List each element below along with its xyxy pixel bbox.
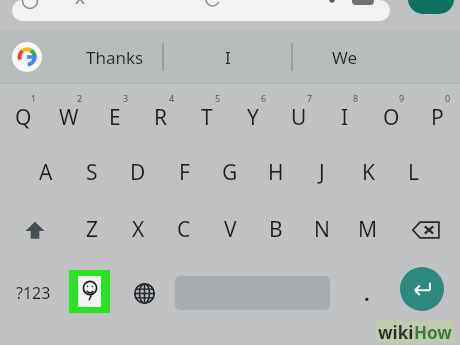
button[interactable]: N — [299, 201, 345, 258]
staticText: ?123 — [16, 282, 51, 304]
staticText: 3 — [123, 92, 129, 104]
staticText: 0 — [445, 92, 451, 104]
button[interactable]: Backspace — [391, 201, 460, 258]
button[interactable]: Shift — [0, 201, 69, 258]
staticText: Thanks — [86, 46, 144, 69]
staticText: . — [364, 280, 370, 307]
button[interactable]: Q — [0, 84, 46, 144]
button[interactable]: Y — [230, 84, 276, 144]
staticText: 9 — [399, 92, 405, 104]
button[interactable]: ?123 — [8, 258, 58, 328]
button[interactable]: A — [23, 144, 69, 201]
staticText: S — [86, 158, 98, 187]
button[interactable]: C — [161, 201, 207, 258]
staticText: 2 — [77, 92, 83, 104]
button[interactable]: Enter — [400, 267, 444, 311]
staticText: A — [39, 158, 53, 187]
button[interactable]: L — [391, 144, 437, 201]
button[interactable]: X — [115, 201, 161, 258]
button[interactable]: B — [253, 201, 299, 258]
staticText: 4 — [169, 92, 175, 104]
staticText: Y — [247, 103, 259, 132]
button[interactable]: P — [414, 84, 460, 144]
button[interactable]: W — [46, 84, 92, 144]
staticText: P — [431, 103, 444, 132]
staticText: C — [177, 215, 191, 244]
button[interactable]: E — [92, 84, 138, 144]
staticText: W — [59, 103, 79, 132]
button[interactable]: Send — [408, 0, 454, 14]
staticText: E — [109, 103, 121, 132]
button[interactable]: Google search — [12, 42, 42, 72]
staticText: R — [154, 103, 168, 132]
staticText: G — [222, 158, 238, 187]
button[interactable]: S — [69, 144, 115, 201]
staticText: N — [314, 215, 330, 244]
staticText: K — [362, 158, 375, 187]
button[interactable] — [12, 0, 390, 21]
staticText: J — [319, 158, 325, 187]
staticText: F — [179, 158, 190, 187]
staticText: Q — [15, 103, 32, 132]
button[interactable]: U — [276, 84, 322, 144]
staticText: I — [225, 46, 231, 69]
staticText: 5 — [215, 92, 221, 104]
button[interactable]: Emoji — [69, 270, 110, 313]
button[interactable]: J — [299, 144, 345, 201]
staticText: U — [291, 103, 307, 132]
staticText: I — [341, 103, 349, 132]
staticText: wiki — [378, 321, 414, 343]
staticText: X — [132, 215, 145, 244]
button[interactable]: H — [253, 144, 299, 201]
staticText: 1 — [31, 92, 37, 104]
button[interactable]: T — [184, 84, 230, 144]
staticText: O — [383, 103, 400, 132]
button[interactable]: O — [368, 84, 414, 144]
staticText: 6 — [261, 92, 267, 104]
staticText: Z — [86, 215, 99, 244]
button[interactable]: . — [345, 271, 389, 315]
button[interactable]: Change keyboard language — [122, 271, 166, 315]
staticText: 8 — [353, 92, 359, 104]
button[interactable]: V — [207, 201, 253, 258]
staticText: How — [414, 321, 452, 343]
button[interactable]: Z — [69, 201, 115, 258]
staticText: H — [268, 158, 284, 187]
staticText: B — [269, 215, 283, 244]
button[interactable]: I — [322, 84, 368, 144]
button[interactable]: R — [138, 84, 184, 144]
button[interactable]: We — [285, 30, 405, 84]
staticText: L — [408, 158, 420, 187]
button[interactable]: M — [345, 201, 391, 258]
button[interactable]: I — [168, 30, 288, 84]
button[interactable]: F — [161, 144, 207, 201]
button[interactable]: D — [115, 144, 161, 201]
staticText: V — [224, 215, 237, 244]
staticText: D — [130, 158, 146, 187]
staticText: 7 — [307, 92, 313, 104]
staticText: M — [358, 215, 378, 244]
staticText: T — [201, 103, 213, 132]
staticText: We — [332, 46, 358, 69]
button[interactable]: K — [345, 144, 391, 201]
button[interactable]: Thanks — [55, 30, 175, 84]
button[interactable]: G — [207, 144, 253, 201]
